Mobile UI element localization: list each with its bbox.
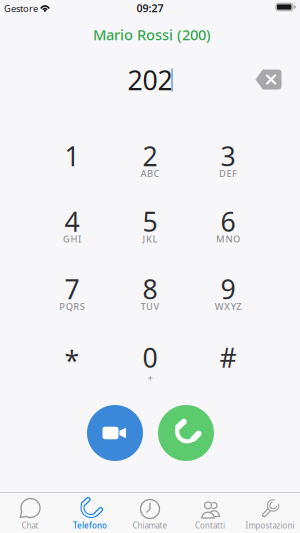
button[interactable]: # [195,334,261,390]
staticText: Impostazioni [245,520,294,531]
button[interactable]: 9 [195,266,261,322]
staticText: ABC [140,167,159,180]
staticText: * [64,343,79,378]
staticText: MNO [216,233,240,245]
staticText: Mario Rossi (200) [93,25,211,44]
button[interactable]: 1 [39,133,105,189]
staticText: DEF [219,167,237,180]
staticText: GHI [63,233,81,245]
staticText: + [147,372,152,384]
button[interactable]: Delete [255,69,281,89]
button[interactable]: Chiamate [120,492,180,533]
staticText: # [219,340,236,375]
staticText: Telefono [73,520,107,531]
staticText: Contatti [195,520,225,531]
staticText: 6 [220,204,235,239]
button[interactable]: 2 [117,133,183,189]
staticText: JKL [142,233,157,245]
button[interactable]: 8 [117,266,183,322]
staticText: WXYZ [215,300,241,313]
staticText: Chat [21,520,38,531]
staticText: PQRS [59,300,85,313]
staticText: 5 [142,204,157,239]
staticText: 9 [220,271,235,307]
button[interactable]: 5 [117,198,183,254]
staticText: TUV [140,300,159,313]
staticText: 2 [142,138,157,174]
button[interactable]: 4 [39,198,105,254]
button[interactable]: Impostazioni [240,492,300,533]
staticText: 7 [64,271,79,307]
button[interactable]: Video call [87,405,143,461]
button[interactable]: Call [158,405,214,461]
staticText: Gestore [4,2,38,15]
staticText: 202 [127,62,172,98]
button[interactable]: Telefono [60,492,120,533]
staticText: Chiamate [132,520,167,531]
staticText: 0 [142,340,157,375]
button[interactable]: 3 [195,133,261,189]
button[interactable]: 0 [117,334,183,390]
staticText: 3 [220,138,235,174]
button[interactable]: 6 [195,198,261,254]
button[interactable]: * [39,334,105,390]
button[interactable]: 7 [39,266,105,322]
staticText: 4 [64,204,79,239]
staticText: 09:27 [136,1,163,15]
button[interactable]: Contatti [180,492,240,533]
staticText: 8 [142,271,157,307]
staticText: 1 [64,138,79,174]
button[interactable]: Chat [0,492,60,533]
